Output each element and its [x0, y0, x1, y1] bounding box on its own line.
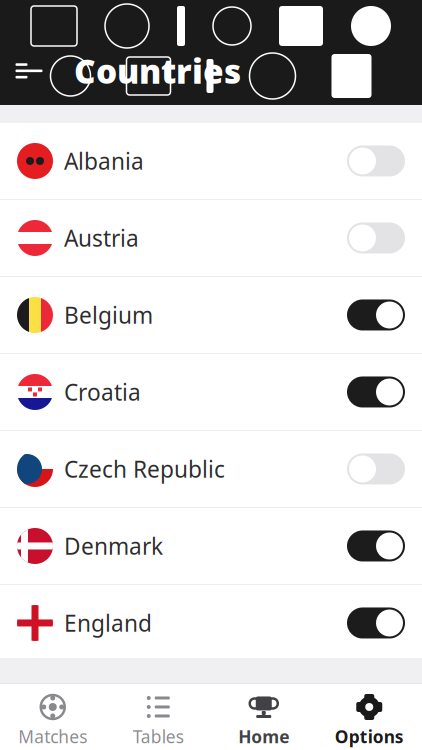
staticText: Denmark — [64, 531, 163, 561]
button[interactable]: Home — [211, 684, 316, 750]
staticText: Matches — [18, 725, 87, 748]
button[interactable]: Denmark — [0, 508, 422, 585]
staticText: Home — [238, 725, 289, 748]
staticText: England — [64, 608, 152, 638]
staticText: Tables — [133, 725, 184, 748]
button[interactable]: Croatia — [0, 354, 422, 431]
staticText: Albania — [64, 146, 144, 176]
button[interactable]: Back — [6, 49, 52, 93]
button[interactable]: Belgium — [0, 277, 422, 354]
button[interactable]: Tables — [105, 684, 211, 750]
button[interactable]: Matches — [0, 684, 105, 750]
staticText: Belgium — [64, 300, 153, 330]
staticText: Czech Republic — [64, 454, 225, 484]
button[interactable]: Czech Republic — [0, 431, 422, 508]
staticText: Countries — [74, 49, 241, 93]
staticText: Austria — [64, 223, 139, 253]
button[interactable]: Austria — [0, 200, 422, 277]
button[interactable]: Options — [316, 684, 422, 750]
button[interactable]: Albania — [0, 123, 422, 200]
staticText: Croatia — [64, 377, 141, 407]
button[interactable]: England — [0, 585, 422, 662]
staticText: Options — [335, 725, 404, 748]
